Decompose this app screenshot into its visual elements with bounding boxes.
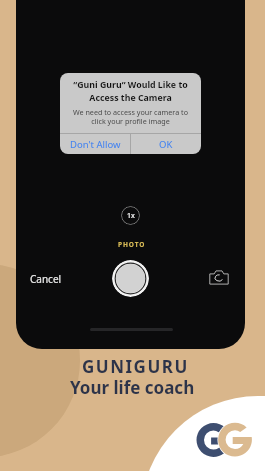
staticText: “Guni Guru” Would Like to Access the Cam… [66, 79, 195, 104]
button[interactable]: Take photo [112, 260, 149, 297]
button[interactable]: Switch camera [209, 270, 229, 285]
button[interactable]: OK [131, 134, 201, 154]
staticText: Don't Allow [70, 138, 121, 151]
button[interactable]: Cancel [28, 270, 64, 288]
staticText: PHOTO [118, 240, 146, 249]
button[interactable]: Don't Allow [60, 134, 130, 154]
staticText: OK [159, 138, 173, 151]
staticText: Cancel [30, 272, 62, 286]
staticText: GUNIGURU [82, 355, 189, 378]
staticText: 1x [127, 211, 135, 221]
staticText: Your life coach [70, 376, 195, 399]
staticText: We need to access your camera to click y… [64, 107, 197, 126]
button[interactable]: Zoom one times [121, 206, 140, 225]
